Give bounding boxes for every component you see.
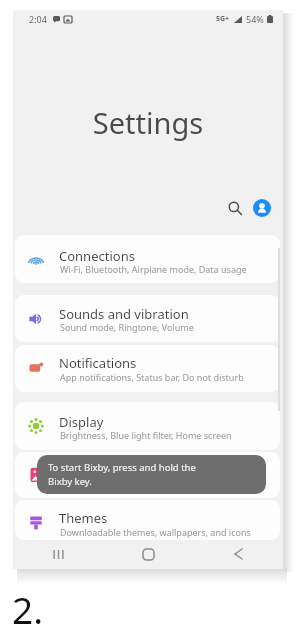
button[interactable]: Recent apps bbox=[13, 540, 103, 568]
staticText: Sounds and vibration bbox=[59, 305, 189, 323]
staticText: 2:04 bbox=[29, 13, 47, 25]
button[interactable]: Display bbox=[15, 402, 280, 450]
staticText: To start Bixby, press and hold the Bixby… bbox=[48, 461, 196, 488]
staticText: Downloadable themes, wallpapers, and ico… bbox=[60, 526, 251, 538]
staticText: Notifications bbox=[59, 354, 137, 372]
staticText: Themes bbox=[59, 509, 108, 527]
staticText: 2. bbox=[12, 584, 44, 630]
staticText: Wallpapers bbox=[59, 462, 128, 480]
staticText: App notifications, Status bar, Do not di… bbox=[60, 371, 244, 383]
staticText: Home screen wallpaper, Lock screen wallp… bbox=[60, 479, 257, 491]
staticText: Wi-Fi, Bluetooth, Airplane mode, Data us… bbox=[60, 263, 247, 275]
staticText: Connections bbox=[59, 247, 135, 265]
staticText: 54% bbox=[246, 13, 264, 25]
staticText: Sound mode, Ringtone, Volume bbox=[60, 321, 194, 333]
staticText: Settings bbox=[13, 103, 283, 142]
button[interactable]: Themes bbox=[15, 500, 280, 540]
staticText: 5G+ bbox=[216, 14, 230, 24]
button[interactable]: Search bbox=[228, 201, 242, 215]
button[interactable]: Sounds and vibration bbox=[15, 295, 280, 342]
staticText: Display bbox=[59, 413, 104, 431]
staticText: Brightness, Blue light filter, Home scre… bbox=[60, 429, 232, 441]
button[interactable]: Connections bbox=[15, 235, 280, 283]
button[interactable]: Wallpapers bbox=[15, 452, 280, 498]
button[interactable]: Account bbox=[253, 199, 271, 217]
button[interactable]: Back bbox=[193, 540, 283, 568]
button[interactable]: Notifications bbox=[15, 345, 280, 392]
button[interactable]: Home bbox=[103, 540, 193, 568]
